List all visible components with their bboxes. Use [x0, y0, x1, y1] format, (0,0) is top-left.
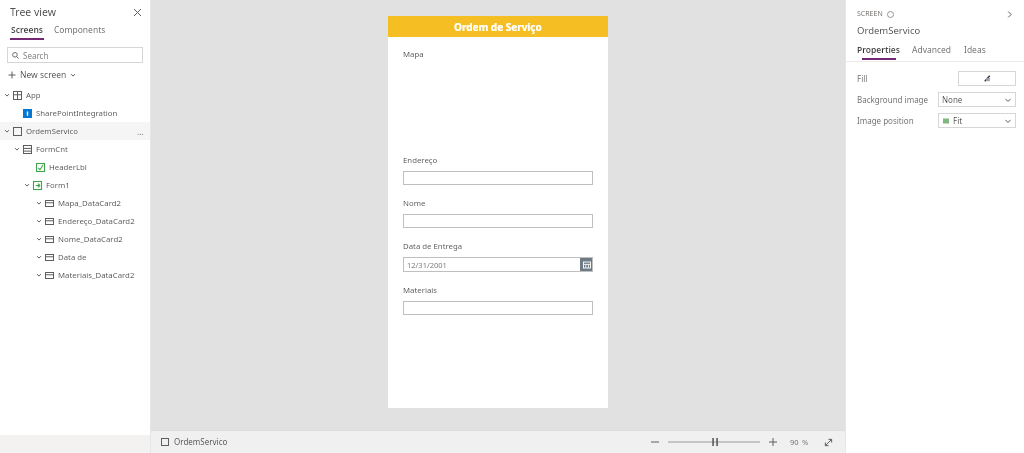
- button[interactable]: Data de Entrega_DataCard2: [0, 248, 150, 266]
- button[interactable]: [403, 301, 593, 315]
- staticText: Nome: [403, 198, 426, 209]
- button[interactable]: Zoom level: [668, 435, 760, 449]
- staticText: Tree view: [10, 5, 57, 19]
- button[interactable]: FormCnt: [0, 140, 150, 158]
- staticText: SCREEN: [857, 9, 883, 19]
- staticText: Components: [54, 24, 106, 36]
- staticText: Background image: [857, 94, 929, 105]
- staticText: Ideas: [964, 44, 986, 56]
- staticText: Mapa_DataCard2: [58, 198, 121, 209]
- button[interactable]: Ideas: [964, 44, 986, 58]
- button[interactable]: App: [0, 86, 150, 104]
- staticText: Mapa: [403, 49, 424, 60]
- button[interactable]: OrdemServico: [0, 122, 150, 140]
- button[interactable]: Ordem de Serviço: [388, 16, 608, 37]
- staticText: HeaderLbl: [49, 162, 87, 173]
- staticText: Fill: [857, 73, 868, 84]
- staticText: %: [802, 437, 809, 447]
- button[interactable]: Fill color: [958, 71, 1016, 86]
- staticText: FormCnt: [36, 144, 68, 155]
- button[interactable]: None: [938, 92, 1016, 107]
- button[interactable]: Fit: [938, 113, 1016, 128]
- button[interactable]: OrdemServico: [161, 436, 228, 447]
- button[interactable]: Mapa_DataCard2: [0, 194, 150, 212]
- button[interactable]: Collapse panel: [1002, 7, 1016, 21]
- button[interactable]: Endereço_DataCard2: [0, 212, 150, 230]
- button[interactable]: Close tree view: [130, 5, 144, 19]
- staticText: 12/31/2001: [407, 260, 447, 270]
- staticText: Materiais: [403, 285, 438, 296]
- button[interactable]: Search: [7, 47, 143, 63]
- staticText: Ordem de Serviço: [454, 20, 542, 34]
- staticText: Nome_DataCard2: [58, 234, 123, 245]
- staticText: Data de Entrega: [403, 241, 463, 252]
- staticText: Advanced: [912, 44, 952, 56]
- staticText: Screens: [11, 24, 44, 36]
- button[interactable]: [403, 171, 593, 185]
- staticText: ...: [137, 126, 144, 137]
- staticText: New screen: [20, 69, 67, 81]
- staticText: Data de Entrega_DataCard2: [58, 252, 150, 263]
- staticText: 90: [790, 437, 799, 447]
- staticText: Search: [23, 50, 49, 61]
- button[interactable]: Zoom out: [648, 435, 662, 449]
- staticText: Form1: [46, 180, 70, 191]
- button[interactable]: [403, 214, 593, 228]
- staticText: OrdemServico: [857, 24, 921, 37]
- staticText: SharePointIntegration: [36, 108, 118, 119]
- staticText: Image position: [857, 115, 914, 126]
- button[interactable]: Properties: [857, 44, 900, 60]
- staticText: None: [942, 94, 963, 105]
- button[interactable]: Fit to screen: [821, 435, 835, 449]
- button[interactable]: Form1: [0, 176, 150, 194]
- staticText: Endereço_DataCard2: [58, 216, 135, 227]
- staticText: Endereço: [403, 155, 438, 166]
- button[interactable]: Components: [54, 24, 106, 38]
- staticText: OrdemServico: [174, 436, 228, 447]
- staticText: Properties: [857, 44, 900, 56]
- staticText: Materiais_DataCard2: [58, 270, 135, 281]
- button[interactable]: Pick date: [580, 258, 593, 271]
- button[interactable]: Materiais_DataCard2: [0, 266, 150, 284]
- button[interactable]: Nome_DataCard2: [0, 230, 150, 248]
- staticText: App: [26, 90, 41, 101]
- button[interactable]: Zoom in: [766, 435, 780, 449]
- button[interactable]: HeaderLbl: [0, 158, 150, 176]
- button[interactable]: SharePointIntegration: [0, 104, 150, 122]
- staticText: OrdemServico: [26, 126, 78, 137]
- button[interactable]: New screen: [8, 68, 150, 82]
- staticText: Fit: [953, 115, 963, 126]
- button[interactable]: 12/31/2001: [403, 257, 593, 272]
- button[interactable]: Advanced: [912, 44, 952, 58]
- button[interactable]: Screens: [10, 24, 44, 40]
